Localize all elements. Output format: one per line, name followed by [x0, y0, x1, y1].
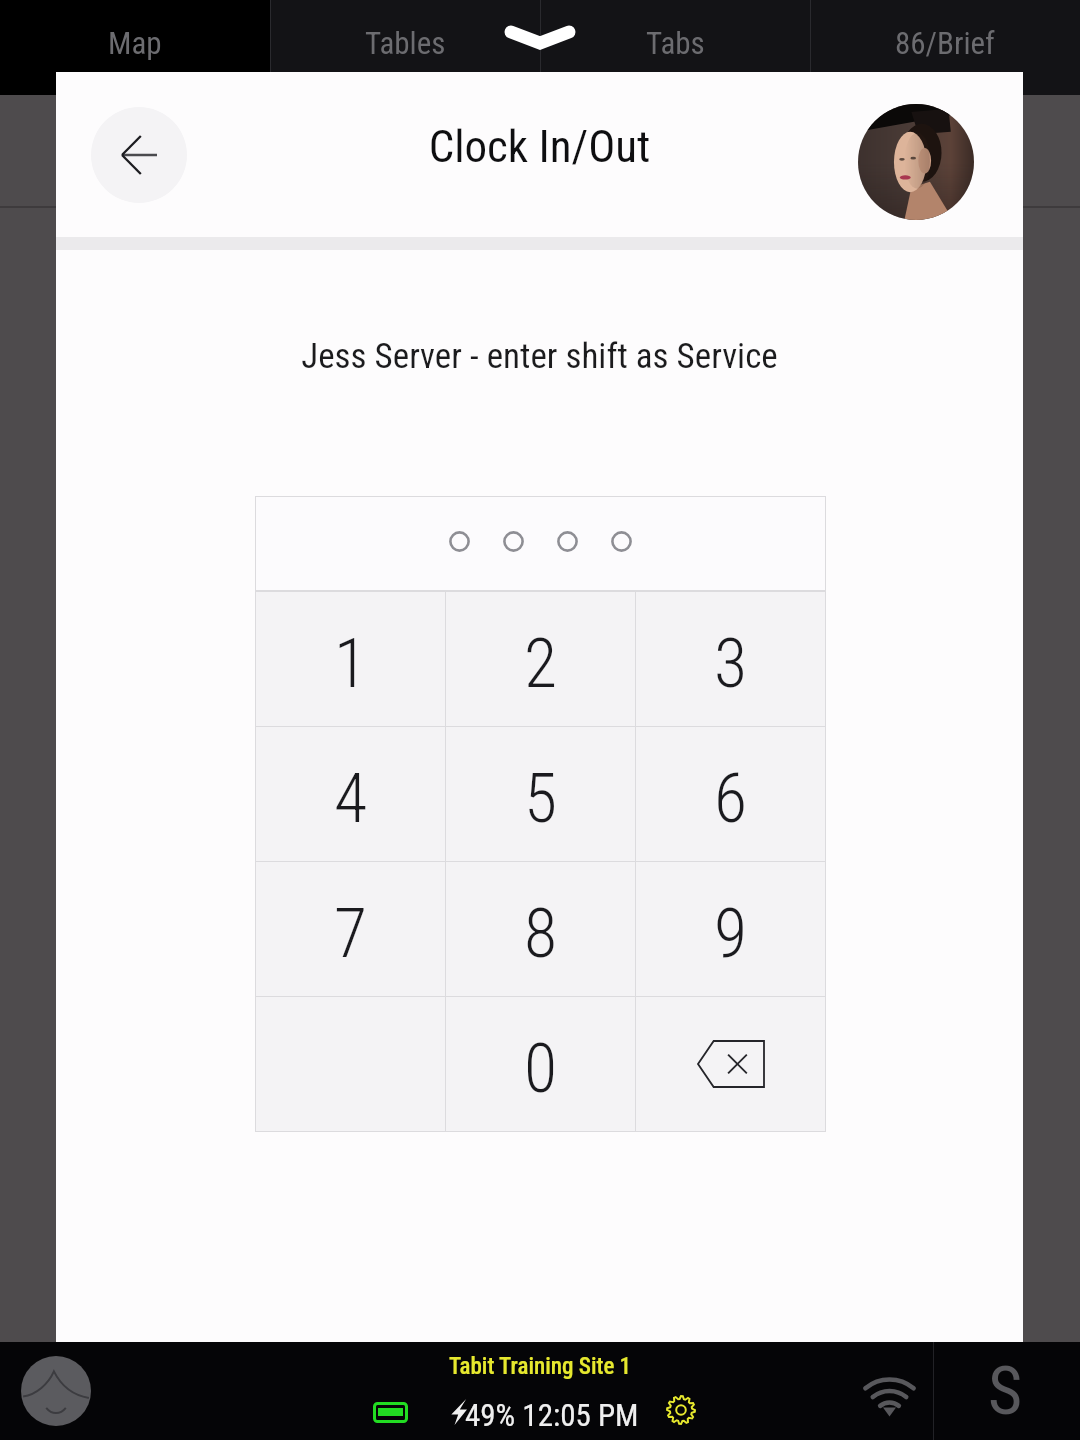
button[interactable]: Tables	[270, 0, 540, 95]
staticText: S	[988, 1353, 1023, 1430]
staticText: 1	[334, 624, 368, 704]
button[interactable]: 2	[446, 592, 635, 726]
staticText: 7	[334, 894, 368, 974]
button[interactable]: WiFi	[849, 1349, 929, 1440]
button[interactable]: Sync status	[934, 1342, 1080, 1440]
staticText: Map	[108, 25, 162, 61]
button[interactable]: Collapse	[504, 26, 576, 49]
button[interactable]: 0	[446, 997, 635, 1131]
staticText: 8	[524, 894, 558, 974]
button[interactable]: User profile	[21, 1356, 91, 1426]
staticText: Jess Server - enter shift as Service	[56, 336, 1023, 377]
button[interactable]: 86/Brief	[810, 0, 1080, 95]
button[interactable]: 8	[446, 862, 635, 996]
staticText: 3	[714, 624, 748, 704]
staticText: Clock In/Out	[56, 120, 1023, 173]
staticText: 6	[714, 759, 748, 839]
button[interactable]: 5	[446, 727, 635, 861]
staticText: Tabs	[646, 25, 705, 61]
button[interactable]: Tabs	[540, 0, 810, 95]
staticText: Tables	[365, 25, 446, 61]
staticText: 4	[334, 759, 368, 839]
button[interactable]: Map	[0, 0, 270, 95]
staticText: 9	[714, 894, 748, 974]
staticText: 5	[524, 759, 558, 839]
staticText: 86/Brief	[895, 25, 995, 61]
staticText: 2	[524, 624, 558, 704]
button[interactable]: Profile	[858, 104, 974, 220]
button[interactable]: 9	[636, 862, 825, 996]
button[interactable]: 7	[256, 862, 445, 996]
button[interactable]: Settings	[666, 1395, 696, 1425]
staticText: Tabit Training Site 1	[0, 1353, 1080, 1380]
button[interactable]: Back	[91, 107, 187, 203]
button[interactable]: 6	[636, 727, 825, 861]
staticText: 0	[524, 1029, 558, 1109]
button[interactable]: 4	[256, 727, 445, 861]
staticText: 49% 12:05 PM	[465, 1397, 639, 1433]
other: Backspace	[697, 1040, 765, 1088]
button[interactable]: 3	[636, 592, 825, 726]
button[interactable]: 1	[256, 592, 445, 726]
button[interactable]: Backspace	[636, 997, 825, 1131]
